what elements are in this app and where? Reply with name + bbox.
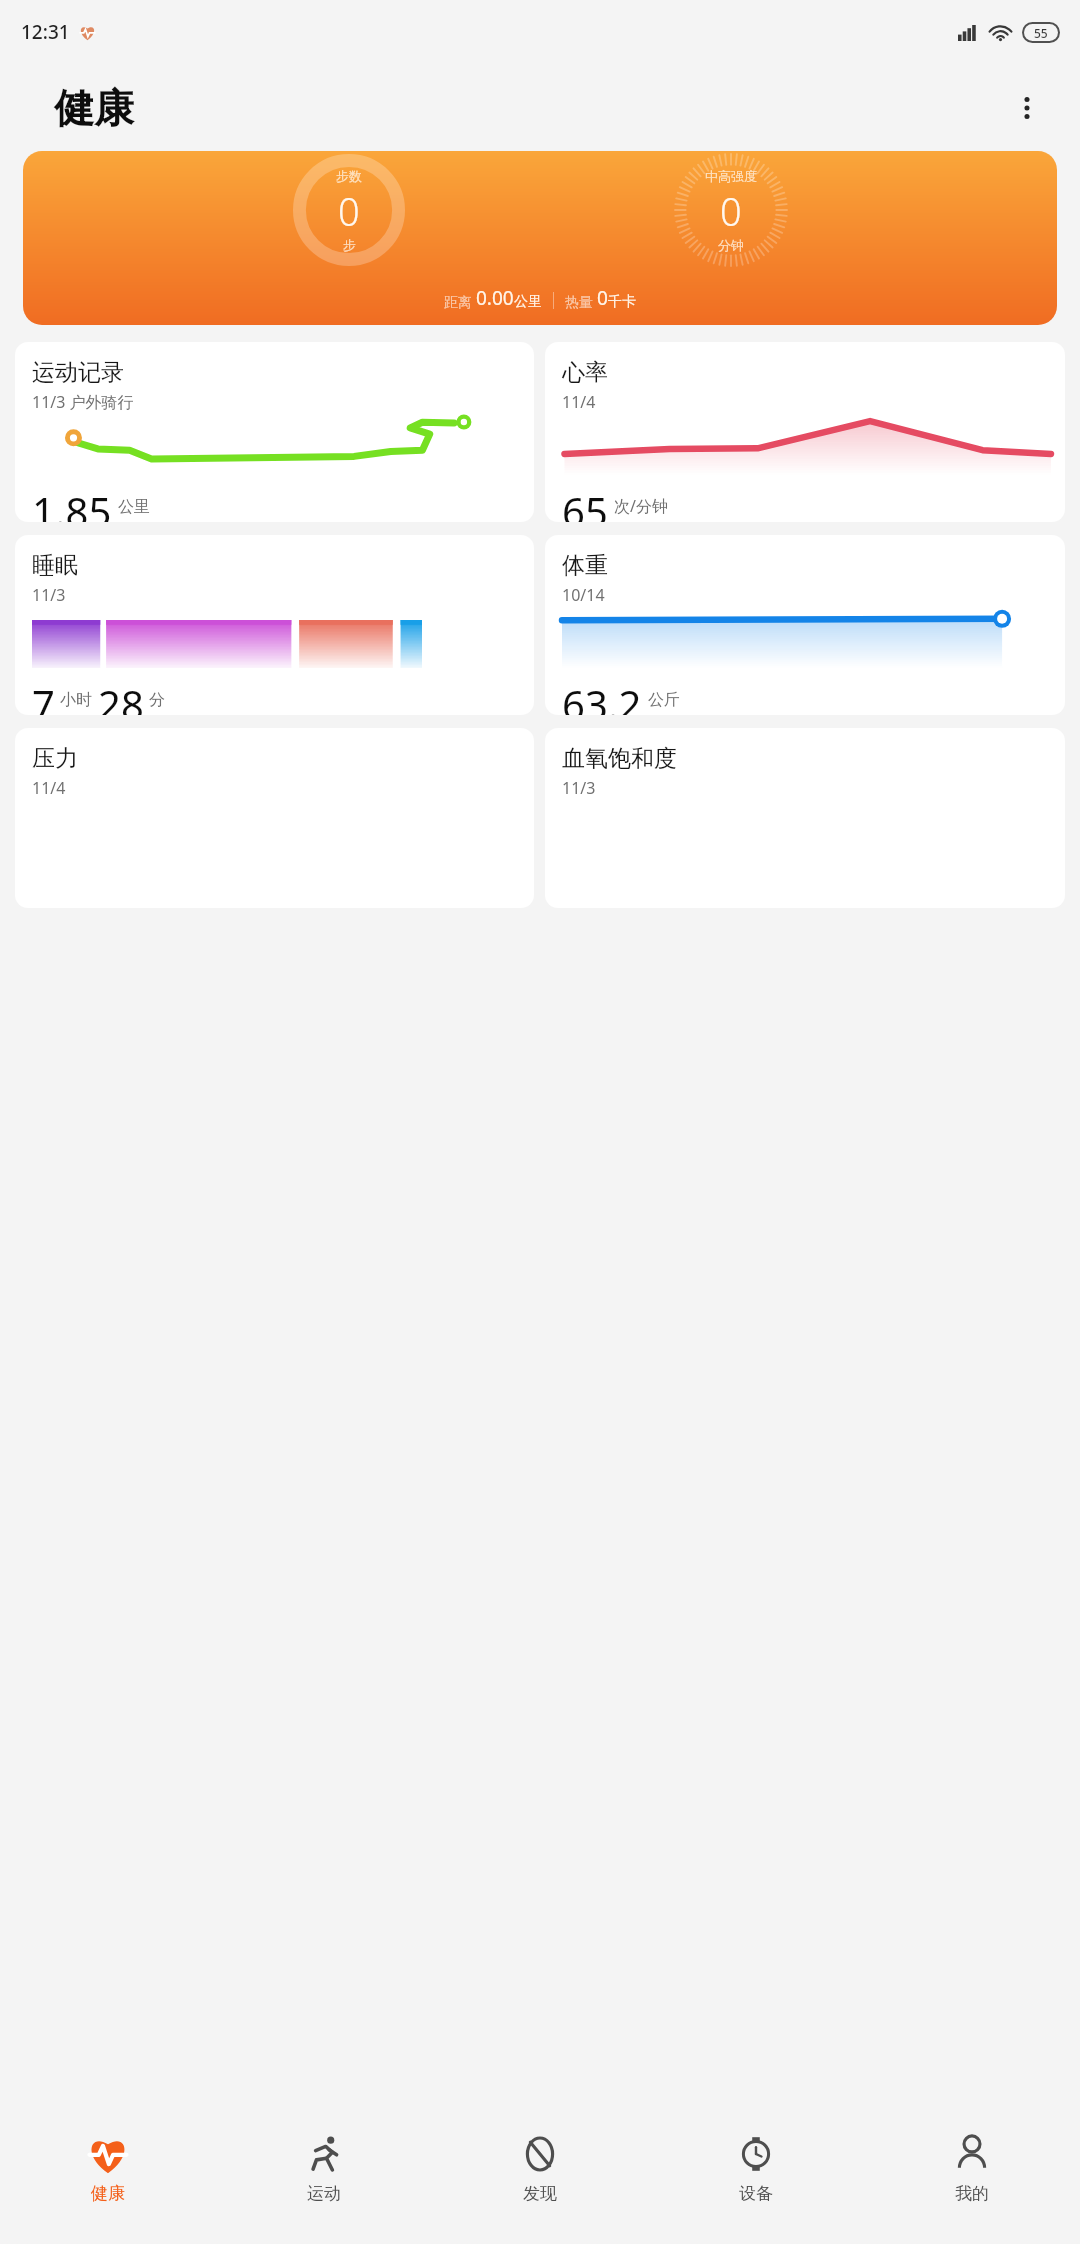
staticText: 0 xyxy=(720,185,742,237)
button[interactable]: 步数 xyxy=(23,151,1057,325)
button[interactable]: 健康 xyxy=(0,2113,216,2244)
staticText: 压力 xyxy=(32,744,78,773)
staticText: 我的 xyxy=(955,2183,989,2204)
staticText: 11/4 xyxy=(562,391,596,413)
staticText: 设备 xyxy=(739,2183,773,2204)
staticText: 中高强度 xyxy=(705,168,757,184)
staticText: 11/4 xyxy=(32,777,66,799)
staticText: 公里 xyxy=(118,497,150,517)
staticText: 距离 xyxy=(444,292,476,311)
button[interactable]: More options xyxy=(998,79,1056,137)
staticText: 步数 xyxy=(336,168,362,184)
staticText: 63.2 xyxy=(562,677,642,715)
button[interactable]: 压力 xyxy=(15,728,534,908)
staticText: 体重 xyxy=(562,551,608,580)
staticText: 分 xyxy=(149,690,165,710)
staticText: 睡眠 xyxy=(32,551,78,580)
staticText: 运动 xyxy=(307,2183,341,2204)
staticText: 0 xyxy=(597,285,608,311)
staticText: 公里 xyxy=(514,293,542,311)
staticText: 小时 xyxy=(60,690,92,710)
staticText: 65 xyxy=(562,484,608,522)
button[interactable]: 设备 xyxy=(648,2113,864,2244)
staticText: 0 xyxy=(338,185,360,237)
staticText: 55 xyxy=(1034,25,1048,41)
button[interactable]: 我的 xyxy=(864,2113,1080,2244)
staticText: 运动记录 xyxy=(32,358,124,387)
staticText: 发现 xyxy=(523,2183,557,2204)
button[interactable]: 运动 xyxy=(216,2113,432,2244)
staticText: 7 xyxy=(32,677,55,715)
staticText: 健康 xyxy=(91,2183,125,2204)
button[interactable]: 睡眠 xyxy=(15,535,534,715)
staticText: 1.85 xyxy=(32,484,112,522)
staticText: 血氧饱和度 xyxy=(562,744,677,773)
staticText: 心率 xyxy=(562,358,608,387)
staticText: 次/分钟 xyxy=(614,495,668,517)
staticText: 28 xyxy=(98,677,144,715)
button[interactable]: 运动记录 xyxy=(15,342,534,522)
staticText: 分钟 xyxy=(718,237,744,253)
staticText: 热量 xyxy=(565,292,597,311)
staticText: 11/3 xyxy=(32,584,66,606)
staticText: 12:31 xyxy=(21,19,70,45)
staticText: 0.00 xyxy=(476,285,514,311)
staticText: 健康 xyxy=(54,83,134,133)
staticText: 11/3 xyxy=(562,777,596,799)
button[interactable]: 体重 xyxy=(545,535,1065,715)
staticText: 公斤 xyxy=(648,690,680,710)
staticText: 11/3 户外骑行 xyxy=(32,391,134,413)
button[interactable]: 血氧饱和度 xyxy=(545,728,1065,908)
button[interactable]: 发现 xyxy=(432,2113,648,2244)
staticText: 千卡 xyxy=(608,293,636,311)
button[interactable]: 心率 xyxy=(545,342,1065,522)
staticText: 步 xyxy=(343,237,356,253)
staticText: 10/14 xyxy=(562,584,605,606)
